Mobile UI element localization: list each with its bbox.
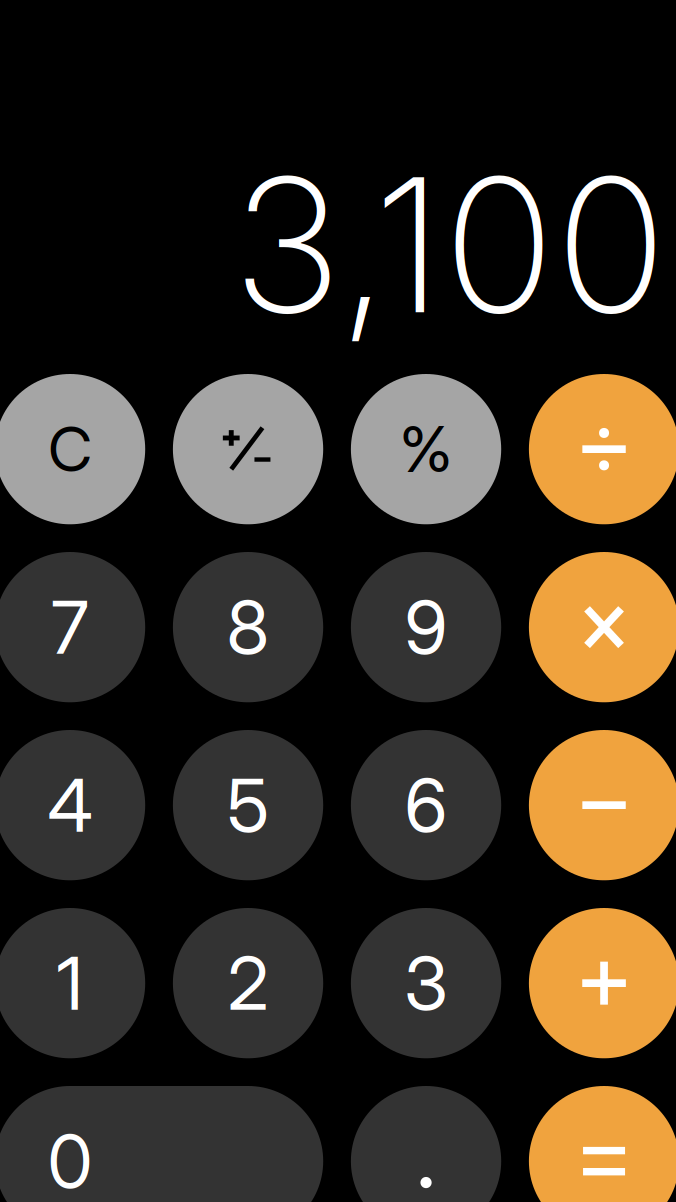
staticText: 3,100 — [232, 133, 667, 357]
button[interactable]: Plus minus — [173, 374, 323, 524]
button[interactable]: 1 — [0, 908, 145, 1058]
button[interactable]: Divide — [529, 374, 676, 524]
staticText: 8 — [227, 583, 270, 671]
button[interactable]: 2 — [173, 908, 323, 1058]
button[interactable]: 9 — [351, 552, 501, 702]
button[interactable]: 0 — [0, 1086, 323, 1202]
staticText: 3 — [404, 939, 448, 1027]
staticText: 7 — [51, 583, 89, 671]
staticText: % — [399, 411, 452, 487]
staticText: 5 — [227, 761, 269, 849]
button[interactable]: Minus — [529, 730, 676, 880]
button[interactable]: 3 — [351, 908, 501, 1058]
button[interactable]: % — [351, 374, 501, 524]
button[interactable]: 6 — [351, 730, 501, 880]
button[interactable]: 5 — [173, 730, 323, 880]
staticText: 2 — [228, 939, 269, 1027]
button[interactable]: C — [0, 374, 145, 524]
staticText: 1 — [57, 939, 84, 1027]
button[interactable]: 8 — [173, 552, 323, 702]
button[interactable]: Equals — [529, 1086, 676, 1202]
staticText: 4 — [48, 761, 93, 849]
staticText: 0 — [48, 1117, 93, 1202]
button[interactable]: Plus — [529, 908, 676, 1058]
staticText: C — [48, 412, 92, 486]
staticText: 6 — [404, 761, 447, 849]
button[interactable]: Multiply — [529, 552, 676, 702]
button[interactable]: Decimal point — [351, 1086, 501, 1202]
button[interactable]: 4 — [0, 730, 145, 880]
button[interactable]: 7 — [0, 552, 145, 702]
staticText: 9 — [404, 583, 447, 671]
